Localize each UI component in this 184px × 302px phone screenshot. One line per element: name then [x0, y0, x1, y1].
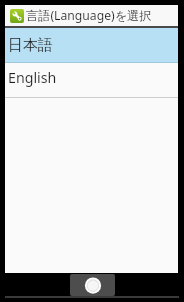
button[interactable]: 日本語	[5, 28, 178, 63]
staticText: English	[8, 68, 57, 87]
button[interactable]: English	[5, 63, 178, 97]
staticText: 日本語	[8, 36, 53, 55]
staticText: 言語(Language)を選択	[26, 7, 152, 24]
button[interactable]: Home	[70, 274, 115, 296]
